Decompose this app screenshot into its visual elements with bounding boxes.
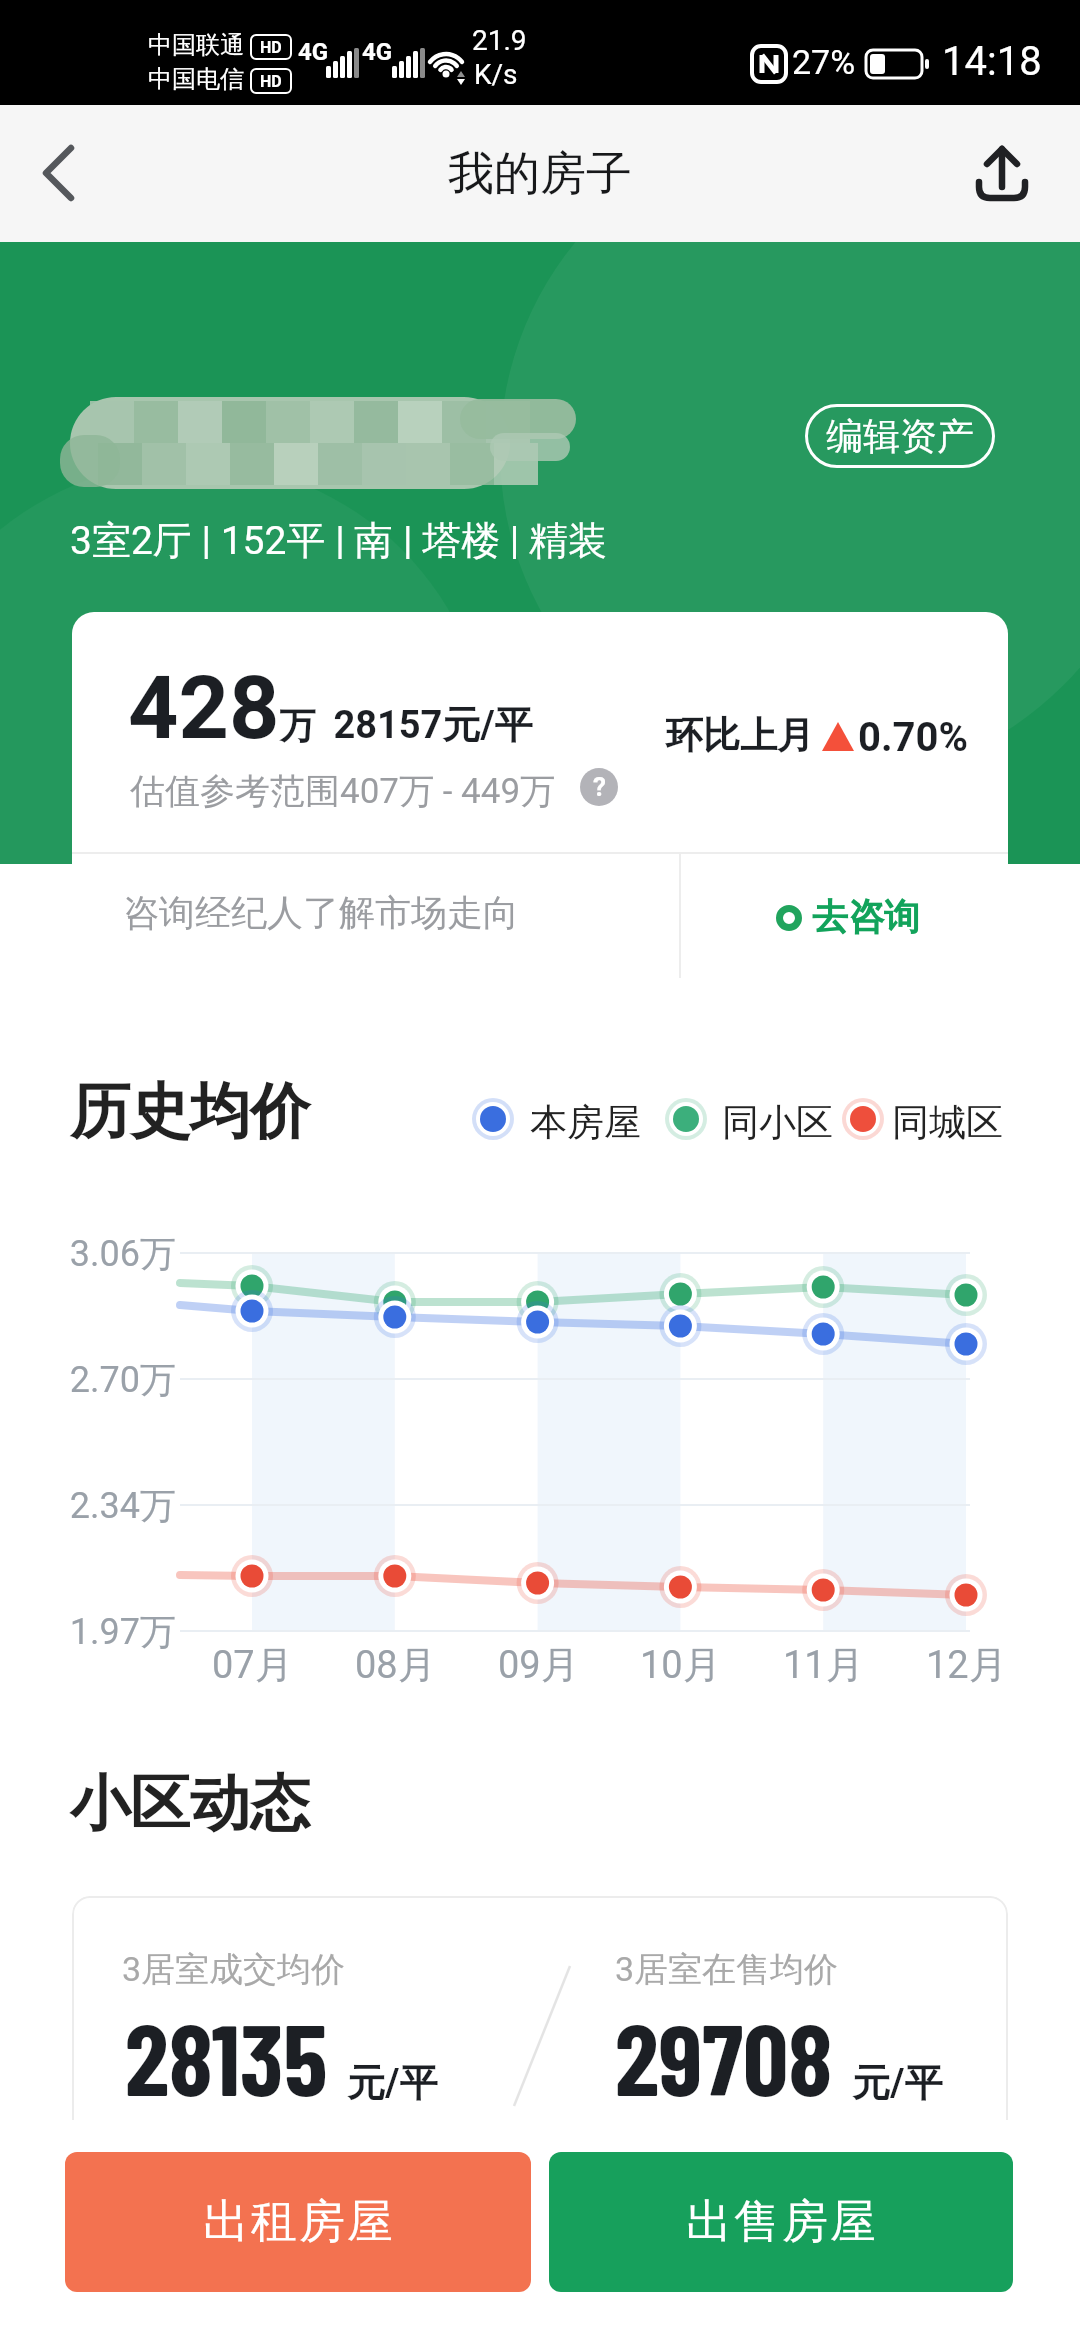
staticText: 4G xyxy=(298,38,329,66)
staticText: 07月 xyxy=(212,1641,293,1689)
staticText: 12月 xyxy=(926,1641,1007,1689)
button[interactable]: 3居室成交均价 xyxy=(72,1896,1008,2196)
staticText: 我的房子 xyxy=(448,145,632,203)
staticText: 中国电信 xyxy=(148,64,244,94)
staticText: 编辑资产 xyxy=(826,413,974,460)
button[interactable]: 出租房屋 xyxy=(65,2152,531,2292)
staticText: K/s xyxy=(474,58,518,91)
staticText: 小区动态 xyxy=(70,1766,310,1842)
staticText: 09月 xyxy=(498,1641,579,1689)
staticText: 08月 xyxy=(355,1641,436,1689)
staticText: 10月 xyxy=(640,1641,721,1689)
button[interactable]: 咨询经纪人了解市场走向 xyxy=(72,854,679,978)
staticText: ? xyxy=(593,772,606,802)
staticText: 27% xyxy=(792,42,856,82)
staticText: 中国联通 xyxy=(148,30,244,60)
staticText: 出售房屋 xyxy=(685,2193,877,2251)
staticText: 3.06万 xyxy=(69,1231,176,1276)
staticText: 咨询经纪人了解市场走向 xyxy=(123,890,519,935)
staticText: 3室2厅 | 152平 | 南 | 塔楼 | 精装 xyxy=(70,516,608,565)
staticText: 同城区 xyxy=(892,1099,1003,1146)
button[interactable] xyxy=(952,130,1052,216)
staticText: 环比上月 xyxy=(666,712,814,759)
button[interactable]: 去咨询 xyxy=(681,854,1008,978)
staticText: 历史均价 xyxy=(70,1074,310,1150)
staticText: 去咨询 xyxy=(812,894,920,939)
button[interactable]: 出售房屋 xyxy=(549,2152,1013,2292)
staticText: 2.34万 xyxy=(69,1483,176,1528)
staticText: 2.70万 xyxy=(69,1357,176,1402)
staticText: 3居室成交均价 xyxy=(122,1948,346,1991)
staticText: 21.9 xyxy=(472,24,527,57)
button[interactable] xyxy=(20,130,100,216)
staticText: 同小区 xyxy=(722,1099,833,1146)
staticText: 3居室在售均价 xyxy=(615,1948,839,1991)
staticText: 0.70% xyxy=(858,714,969,761)
staticText: 估值参考范围407万 - 449万 xyxy=(130,769,556,813)
staticText: HD xyxy=(260,38,282,57)
staticText: 428万 28157元/平 xyxy=(128,656,533,759)
staticText: 28135 元/平 xyxy=(125,1996,438,2116)
staticText: 本房屋 xyxy=(530,1099,641,1146)
staticText: 29708 元/平 xyxy=(615,1996,943,2116)
staticText: HD xyxy=(260,72,282,91)
button[interactable]: 编辑资产 xyxy=(805,404,995,468)
staticText: 11月 xyxy=(783,1641,864,1689)
staticText: 1.97万 xyxy=(69,1609,176,1654)
staticText: 4G xyxy=(362,38,393,66)
staticText: 14:18 xyxy=(942,38,1042,85)
staticText: 出租房屋 xyxy=(202,2193,394,2251)
